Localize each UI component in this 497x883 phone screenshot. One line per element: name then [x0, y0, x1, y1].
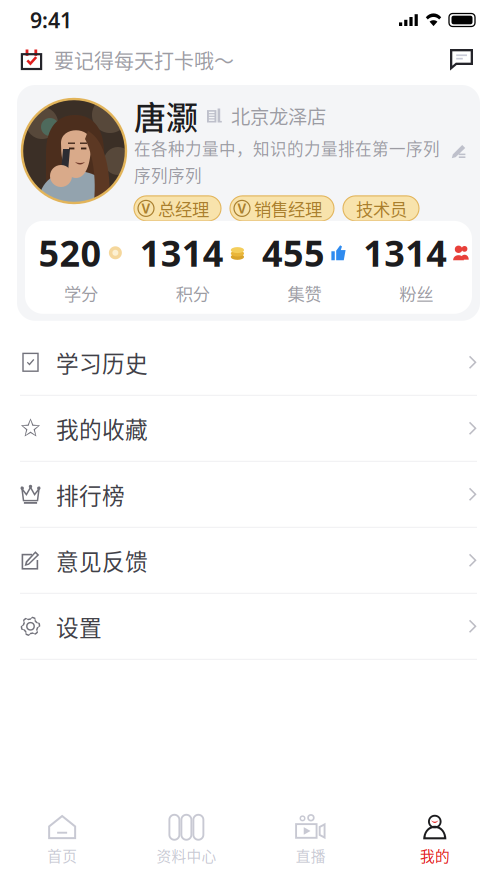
staticText: 455 [262, 229, 325, 277]
staticText: 设置 [56, 610, 102, 643]
staticText: V [141, 199, 150, 217]
staticText: 总经理 [158, 196, 209, 221]
button[interactable]: Messages [450, 44, 497, 76]
staticText: 我的 [420, 845, 450, 866]
staticText: 唐灏 [134, 92, 198, 139]
staticText: 粉丝 [399, 281, 433, 306]
button[interactable]: 要记得每天打卡哦～ [0, 40, 234, 79]
staticText: 首页 [47, 845, 77, 866]
button[interactable]: 资料中心 [124, 810, 248, 871]
button[interactable]: 直播 [248, 810, 373, 871]
staticText: 1314 [363, 229, 447, 277]
staticText: 要记得每天打卡哦～ [54, 45, 234, 74]
staticText: 销售经理 [254, 196, 322, 221]
button[interactable]: 意见反馈 [0, 528, 497, 594]
staticText: 520 [38, 229, 101, 277]
staticText: 意见反馈 [56, 544, 148, 577]
button[interactable]: 我的 [373, 810, 497, 871]
staticText: 北京龙泽店 [231, 101, 326, 129]
button[interactable]: 我的收藏 [0, 396, 497, 462]
staticText: 排行榜 [56, 478, 125, 511]
staticText: 资料中心 [156, 845, 216, 866]
button[interactable]: 设置 [0, 594, 497, 660]
staticText: 1314 [140, 229, 224, 277]
staticText: 技术员 [356, 196, 407, 221]
staticText: 序列序列 [134, 163, 202, 187]
button[interactable]: 学习历史 [0, 330, 497, 396]
staticText: 学分 [64, 281, 98, 306]
button[interactable]: 首页 [0, 810, 124, 871]
staticText: 集赞 [287, 281, 321, 306]
staticText: 我的收藏 [56, 412, 148, 445]
button[interactable]: 排行榜 [0, 462, 497, 528]
staticText: 学习历史 [56, 346, 148, 379]
staticText: 积分 [176, 281, 210, 306]
staticText: 直播 [296, 845, 326, 866]
staticText: 在各种力量中，知识的力量排在第一序列 [134, 136, 440, 160]
staticText: 9:41 [30, 6, 72, 34]
staticText: V [237, 199, 246, 217]
button[interactable]: Edit profile [451, 85, 480, 159]
